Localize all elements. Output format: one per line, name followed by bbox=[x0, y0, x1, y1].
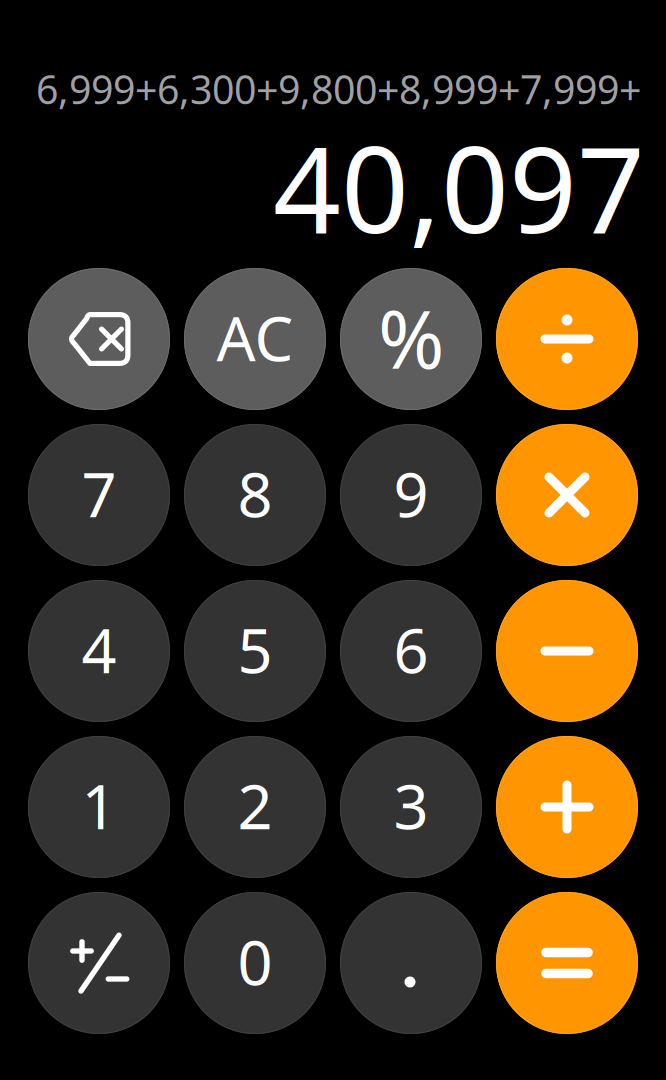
button[interactable]: Multiply bbox=[496, 424, 638, 566]
button[interactable]: 1 bbox=[28, 736, 170, 878]
button[interactable]: % bbox=[340, 268, 482, 410]
button[interactable]: 6 bbox=[340, 580, 482, 722]
staticText: AC bbox=[216, 297, 293, 378]
staticText: 40,097 bbox=[273, 106, 645, 268]
button[interactable]: 0 bbox=[184, 892, 326, 1034]
button[interactable]: 7 bbox=[28, 424, 170, 566]
staticText: 0 bbox=[237, 921, 272, 1002]
button[interactable]: 4 bbox=[28, 580, 170, 722]
staticText: 3 bbox=[393, 765, 428, 846]
staticText: 9 bbox=[393, 453, 428, 534]
staticText: 8 bbox=[237, 453, 272, 534]
button[interactable]: Plus minus bbox=[28, 892, 170, 1034]
staticText: 6 bbox=[393, 609, 428, 690]
staticText: 4 bbox=[81, 609, 116, 690]
staticText: 2 bbox=[237, 765, 272, 846]
button[interactable]: Plus bbox=[496, 736, 638, 878]
button[interactable]: 9 bbox=[340, 424, 482, 566]
button[interactable]: AC bbox=[184, 268, 326, 410]
button[interactable]: 2 bbox=[184, 736, 326, 878]
staticText: 1 bbox=[81, 765, 116, 846]
button[interactable]: Divide bbox=[496, 268, 638, 410]
button[interactable]: 8 bbox=[184, 424, 326, 566]
staticText: 6,999+6,300+9,800+8,999+7,999+ bbox=[36, 62, 641, 116]
staticText: 5 bbox=[237, 609, 272, 690]
button[interactable]: Delete bbox=[28, 268, 170, 410]
button[interactable]: 3 bbox=[340, 736, 482, 878]
staticText: % bbox=[378, 284, 444, 391]
button[interactable]: Minus bbox=[496, 580, 638, 722]
button[interactable]: 5 bbox=[184, 580, 326, 722]
button[interactable]: Equals bbox=[496, 892, 638, 1034]
button[interactable]: Decimal point bbox=[340, 892, 482, 1034]
staticText: 7 bbox=[81, 453, 116, 534]
